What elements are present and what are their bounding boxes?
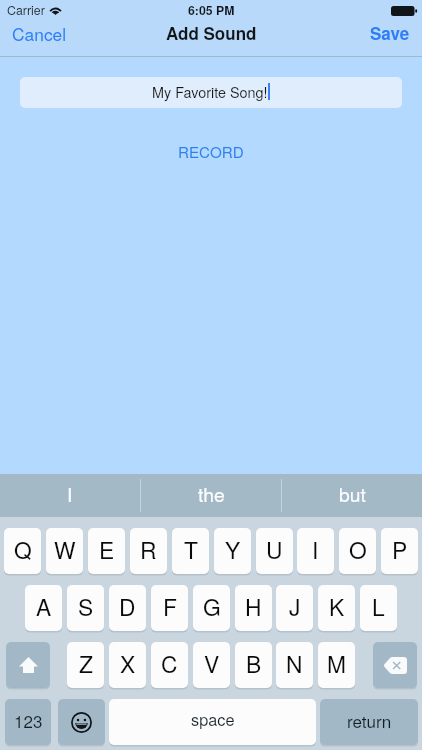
button[interactable]: V xyxy=(193,642,230,688)
staticText: C xyxy=(161,647,178,680)
button[interactable]: Shift xyxy=(6,642,50,688)
button[interactable]: I xyxy=(0,474,140,517)
button[interactable]: C xyxy=(151,642,188,688)
staticText: the xyxy=(198,480,225,508)
staticText: X xyxy=(120,647,136,680)
staticText: My Favorite Song! xyxy=(152,81,268,102)
staticText: W xyxy=(54,533,76,566)
staticText: space xyxy=(191,707,235,730)
button[interactable]: J xyxy=(276,585,313,631)
staticText: Save xyxy=(370,21,410,45)
staticText: H xyxy=(245,590,262,623)
staticText: J xyxy=(289,590,301,623)
staticText: Cancel xyxy=(12,21,67,46)
button[interactable]: Save xyxy=(356,17,422,49)
staticText: return xyxy=(347,708,392,732)
button[interactable]: U xyxy=(256,528,293,574)
button[interactable]: My Favorite Song! xyxy=(20,77,402,108)
button[interactable]: I xyxy=(297,528,334,574)
button[interactable]: R xyxy=(130,528,167,574)
staticText: B xyxy=(246,647,262,680)
button[interactable]: the xyxy=(141,474,281,517)
button[interactable]: Emoji keyboard xyxy=(58,699,105,745)
button[interactable]: Backspace xyxy=(373,642,417,688)
button[interactable]: P xyxy=(381,528,418,574)
button[interactable]: G xyxy=(193,585,230,631)
staticText: F xyxy=(163,590,177,623)
staticText: V xyxy=(204,647,220,680)
staticText: RECORD xyxy=(178,141,244,163)
button[interactable]: return xyxy=(320,699,418,745)
staticText: K xyxy=(329,590,345,623)
staticText: S xyxy=(78,590,94,623)
button[interactable]: Cancel xyxy=(0,17,81,49)
button[interactable]: Q xyxy=(4,528,41,574)
staticText: Y xyxy=(225,533,241,566)
button[interactable]: space xyxy=(109,699,316,745)
button[interactable]: Y xyxy=(214,528,251,574)
button[interactable]: 123 xyxy=(5,699,51,745)
button[interactable]: but xyxy=(282,474,422,517)
staticText: I xyxy=(312,533,319,566)
staticText: Q xyxy=(14,533,32,566)
staticText: P xyxy=(392,533,408,566)
staticText: Add Sound xyxy=(166,21,257,45)
button[interactable]: X xyxy=(109,642,146,688)
button[interactable]: RECORD xyxy=(164,137,258,167)
button[interactable]: S xyxy=(67,585,104,631)
button[interactable]: T xyxy=(172,528,209,574)
staticText: Z xyxy=(79,647,93,680)
button[interactable]: H xyxy=(235,585,272,631)
staticText: A xyxy=(36,590,52,623)
button[interactable]: F xyxy=(151,585,188,631)
staticText: T xyxy=(184,533,198,566)
button[interactable]: E xyxy=(88,528,125,574)
button[interactable]: N xyxy=(276,642,313,688)
staticText: 6:05 PM xyxy=(188,1,235,19)
button[interactable]: W xyxy=(46,528,83,574)
staticText: G xyxy=(203,590,221,623)
staticText: 123 xyxy=(14,708,43,732)
button[interactable]: B xyxy=(235,642,272,688)
staticText: E xyxy=(99,533,115,566)
button[interactable]: D xyxy=(109,585,146,631)
button[interactable]: K xyxy=(318,585,355,631)
button[interactable]: L xyxy=(360,585,397,631)
staticText: U xyxy=(266,533,283,566)
staticText: Carrier xyxy=(7,1,45,19)
staticText: O xyxy=(349,533,367,566)
staticText: L xyxy=(372,590,385,623)
button[interactable]: Z xyxy=(67,642,104,688)
staticText: D xyxy=(119,590,136,623)
staticText: N xyxy=(286,647,303,680)
staticText: I xyxy=(67,480,73,508)
staticText: M xyxy=(327,647,346,680)
button[interactable]: A xyxy=(25,585,62,631)
staticText: but xyxy=(339,480,366,508)
staticText: R xyxy=(140,533,157,566)
button[interactable]: M xyxy=(318,642,355,688)
button[interactable]: O xyxy=(339,528,376,574)
